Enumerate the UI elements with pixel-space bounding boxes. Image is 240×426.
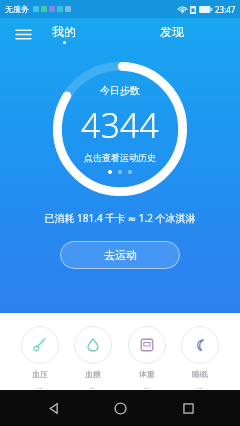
staticText: 去运动 <box>104 248 137 262</box>
button[interactable]: Home <box>105 393 135 423</box>
staticText: -- <box>90 382 96 390</box>
staticText: -- <box>197 382 203 390</box>
button[interactable]: Menu <box>10 21 36 47</box>
button[interactable]: 血糖 <box>72 326 114 390</box>
staticText: 无服务 <box>5 4 29 14</box>
staticText: -- <box>37 382 43 390</box>
staticText: 今日步数 <box>100 84 140 97</box>
staticText: 点击查看运动历史 <box>84 152 156 163</box>
button[interactable]: 发现 <box>160 24 184 39</box>
button[interactable]: 血压 <box>19 326 61 390</box>
button[interactable]: Back <box>38 393 68 423</box>
button[interactable]: 我的 <box>52 24 76 44</box>
staticText: 已消耗 181.4 千卡 ≈ 1.2 个冰淇淋 <box>0 211 240 225</box>
staticText: 血糖 <box>85 369 101 379</box>
button[interactable]: 体重 <box>126 326 168 390</box>
staticText: 4344 <box>81 102 159 148</box>
button[interactable]: 睡眠 <box>179 326 221 390</box>
button[interactable]: Recents <box>173 393 203 423</box>
staticText: 我的 <box>52 24 76 39</box>
staticText: 发现 <box>160 24 184 39</box>
staticText: 血压 <box>32 369 48 379</box>
staticText: 体重 <box>139 369 155 379</box>
staticText: 23:47 <box>215 4 236 15</box>
staticText: 睡眠 <box>192 369 208 379</box>
button[interactable]: 去运动 <box>60 241 180 269</box>
button[interactable]: 今日步数 <box>81 84 159 174</box>
staticText: -- <box>144 382 150 390</box>
